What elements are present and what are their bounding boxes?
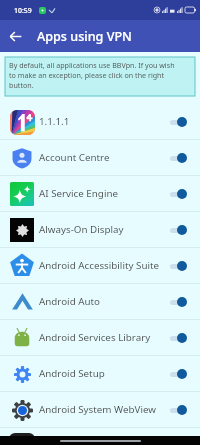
button[interactable]: Always-On Display [0,212,200,247]
button[interactable]: Android System WebView [0,392,200,427]
staticText: Android Auto [39,295,100,308]
button[interactable]: Toggle VPN for app [169,329,195,347]
staticText: Android Setup [39,367,105,380]
button[interactable]: Toggle VPN for app [169,113,195,131]
button[interactable] [0,428,200,445]
button[interactable]: Toggle VPN for app [169,365,195,383]
staticText: Android System WebView [39,403,156,416]
staticText: Android Accessibility Suite [39,259,160,272]
staticText: By default, all applications use BBVpn. … [9,60,176,90]
staticText: Account Centre [39,151,110,164]
button[interactable]: Toggle VPN for app [169,257,195,275]
button[interactable]: Back [4,25,26,47]
button[interactable]: Android Setup [0,356,200,391]
staticText: 10:59 [14,6,32,15]
button[interactable]: Toggle VPN for app [169,293,195,311]
button[interactable]: Android Auto [0,284,200,319]
button[interactable]: Android Accessibility Suite [0,248,200,283]
button[interactable]: Toggle VPN for app [169,185,195,203]
button[interactable]: Toggle VPN for app [169,149,195,167]
button[interactable]: Toggle VPN for app [169,401,195,419]
staticText: Android Services Library [39,331,151,344]
staticText: 1.1.1.1 [39,115,70,128]
button[interactable]: AI Service Engine [0,176,200,211]
staticText: Always-On Display [39,223,124,236]
staticText: Apps using VPN [37,28,132,45]
button[interactable]: Account Centre [0,140,200,175]
button[interactable]: Android Services Library [0,320,200,355]
button[interactable]: 1.1.1.1 [0,104,200,139]
staticText: AI Service Engine [39,187,118,200]
button[interactable]: Toggle VPN for app [169,221,195,239]
